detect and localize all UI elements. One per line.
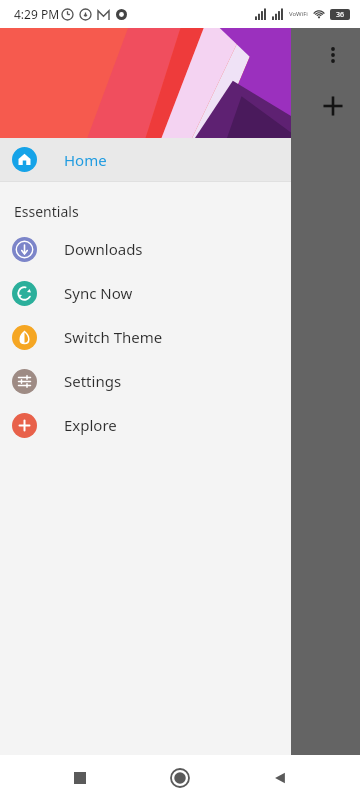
button[interactable]: SSC Syllabus: [0, 535, 360, 670]
staticText: Excel - Conditional F...: [0, 339, 360, 375]
button[interactable]: Back: [260, 758, 300, 798]
staticText: Essentials: [14, 202, 79, 221]
button[interactable]: Sync Now: [0, 271, 291, 315]
button[interactable]: Home: [0, 138, 291, 181]
button[interactable]: Switch Theme: [0, 315, 291, 359]
button[interactable]: 10: [0, 130, 360, 265]
button[interactable]: Recent apps: [60, 758, 100, 798]
button[interactable]: Home: [160, 758, 200, 798]
button[interactable]: Settings: [0, 359, 291, 403]
button[interactable]: Add: [316, 89, 350, 123]
button[interactable]: 8: [0, 400, 360, 535]
button[interactable]: More options: [318, 40, 348, 70]
staticText: Downloads: [64, 239, 143, 259]
staticText: Word - Page Layout & Ref...: [0, 474, 360, 510]
staticText: 36: [336, 10, 345, 20]
staticText: SSC Syllabus: [0, 609, 360, 627]
staticText: Explore: [64, 415, 117, 435]
staticText: 10: [204, 134, 217, 149]
staticText: 4:29 PM: [14, 6, 60, 22]
button[interactable]: Explore: [0, 403, 291, 447]
staticText: Home: [64, 150, 107, 170]
button[interactable]: Downloads: [0, 227, 291, 271]
button[interactable]: 7: [0, 265, 360, 400]
staticText: Settings: [64, 371, 122, 391]
staticText: Excel Fundamental...: [0, 204, 360, 240]
staticText: Sync Now: [64, 283, 133, 303]
staticText: VoWiFi: [289, 10, 308, 18]
staticText: Switch Theme: [64, 327, 163, 347]
